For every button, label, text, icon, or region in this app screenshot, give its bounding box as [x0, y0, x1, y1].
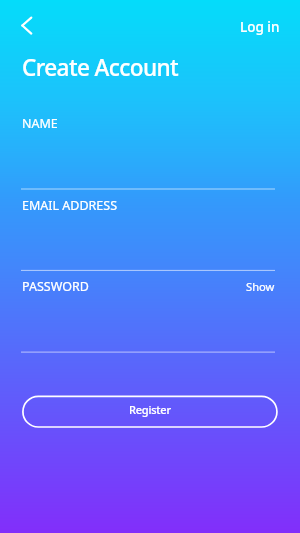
staticText: NAME: [22, 115, 58, 132]
button[interactable]: Back: [8, 7, 45, 44]
staticText: Show: [246, 279, 275, 294]
staticText: EMAIL ADDRESS: [22, 197, 118, 214]
button[interactable]: Register: [22, 396, 278, 428]
staticText: Log in: [240, 18, 280, 36]
button[interactable]: Show: [238, 273, 283, 300]
staticText: PASSWORD: [22, 278, 89, 295]
staticText: Register: [129, 402, 171, 417]
button[interactable]: Log in: [232, 12, 288, 42]
staticText: Create Account: [22, 52, 179, 83]
